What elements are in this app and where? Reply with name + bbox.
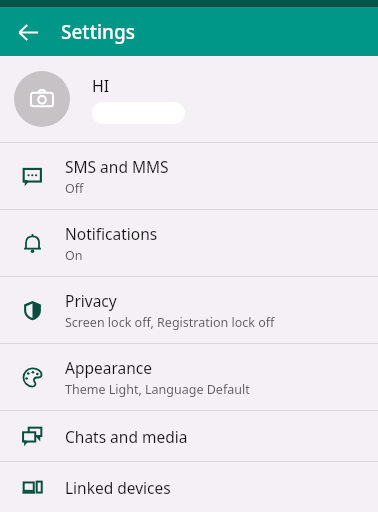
staticText: Screen lock off, Registration lock off: [65, 314, 275, 331]
staticText: Privacy: [65, 290, 117, 311]
button[interactable]: SMS and MMS: [0, 143, 378, 209]
button[interactable]: Privacy: [0, 277, 378, 343]
button[interactable]: Change profile photo: [0, 56, 378, 142]
staticText: Linked devices: [65, 477, 171, 498]
staticText: SMS and MMS: [65, 156, 169, 177]
staticText: Appearance: [65, 357, 152, 378]
staticText: Theme Light, Language Default: [65, 381, 250, 398]
staticText: Off: [65, 180, 84, 197]
staticText: Notifications: [65, 223, 158, 244]
other: Change profile photo: [14, 71, 70, 127]
button[interactable]: Linked devices: [0, 462, 378, 512]
button[interactable]: Back: [8, 12, 48, 52]
button[interactable]: Notifications: [0, 210, 378, 276]
staticText: On: [65, 247, 83, 264]
button[interactable]: Chats and media: [0, 411, 378, 461]
button[interactable]: Appearance: [0, 344, 378, 410]
staticText: HI: [92, 75, 110, 97]
staticText: Chats and media: [65, 426, 188, 447]
staticText: Settings: [61, 19, 135, 45]
